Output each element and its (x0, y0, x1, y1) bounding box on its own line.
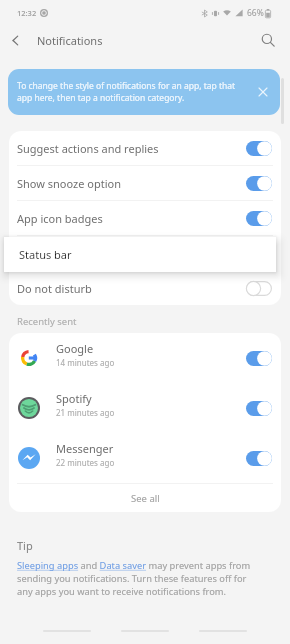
staticText: Do not disturb (17, 281, 92, 296)
staticText: Sleeping apps and Data saver may prevent… (17, 559, 264, 598)
staticText: 14 minutes ago (56, 357, 115, 368)
button[interactable]: App icon badges (9, 201, 281, 236)
staticText: 21 minutes ago (56, 407, 115, 418)
button[interactable]: Status bar (4, 237, 276, 272)
staticText: Recently sent (17, 315, 77, 328)
staticText: Notifications (37, 33, 103, 48)
button[interactable]: Suggest actions and replies (9, 131, 281, 166)
button[interactable]: To change the style of notifications for… (8, 69, 280, 115)
button[interactable]: Status bar (9, 236, 281, 271)
button[interactable]: See all (9, 484, 281, 512)
button[interactable]: Back (184, 621, 262, 641)
staticText: Google (56, 341, 94, 356)
staticText: Status bar (17, 246, 70, 261)
staticText: 66% (247, 7, 264, 19)
button[interactable]: Close (255, 84, 271, 100)
button[interactable]: Do not disturb (9, 271, 281, 305)
button[interactable]: Back (0, 27, 30, 53)
button[interactable]: Google (9, 333, 281, 383)
staticText: Suggest actions and replies (17, 141, 159, 156)
staticText: App icon badges (17, 211, 103, 226)
staticText: To change the style of notifications for… (17, 80, 236, 104)
button[interactable]: Home (106, 621, 184, 641)
staticText: Messenger (56, 441, 114, 456)
staticText: Status bar (19, 247, 72, 262)
staticText: See all (131, 492, 160, 505)
staticText: Tip (17, 538, 33, 553)
button[interactable]: Spotify (9, 383, 281, 433)
staticText: Show snooze option (17, 176, 121, 191)
staticText: Spotify (56, 391, 92, 406)
staticText: 22 minutes ago (56, 457, 115, 468)
button[interactable]: Messenger (9, 433, 281, 483)
button[interactable]: Recents (28, 621, 106, 641)
button[interactable]: Show snooze option (9, 166, 281, 201)
staticText: 12:32 (17, 8, 37, 18)
button[interactable]: Search (255, 27, 281, 53)
